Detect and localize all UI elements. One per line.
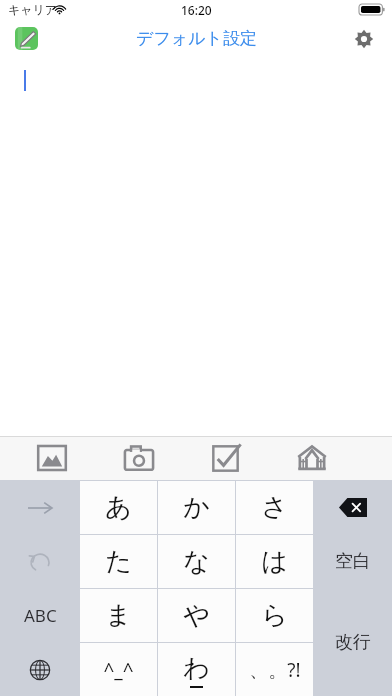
button[interactable]: 取り消し [1,535,79,588]
button[interactable]: 、。?! [236,643,313,696]
button[interactable]: 写真 [24,436,80,480]
button[interactable]: ら [236,589,313,642]
button[interactable]: わ [158,643,235,696]
staticText: あ [105,491,132,524]
button[interactable]: や [158,589,235,642]
staticText: 16:20 [181,2,212,18]
staticText: 改行 [335,631,371,654]
button[interactable]: か [158,481,235,534]
staticText: わ [183,652,210,685]
button[interactable]: は [236,535,313,588]
button[interactable]: 設定 [348,23,380,55]
staticText: 、。?! [249,657,301,683]
button[interactable]: 言語切り替え [1,643,79,696]
button[interactable]: カメラ [111,436,167,480]
staticText: ^_^ [103,657,134,683]
button[interactable]: ま [80,589,157,642]
staticText: 空白 [335,550,371,573]
staticText: な [183,545,210,578]
button[interactable]: 削除 [314,481,392,534]
button[interactable]: ABC [1,589,79,642]
button[interactable]: た [80,535,157,588]
button[interactable]: 空白 [314,535,392,588]
button[interactable]: あ [80,481,157,534]
button[interactable]: ホーム [284,436,340,480]
staticText: デフォルト設定 [136,28,257,49]
staticText: ABC [24,604,57,627]
staticText: か [183,491,210,524]
button[interactable]: カーソル移動 [1,481,79,534]
staticText: た [105,545,132,578]
staticText: ら [261,599,288,632]
button[interactable]: ^_^ [80,643,157,696]
button[interactable]: チェック [197,436,253,480]
button[interactable]: 改行 [314,589,392,696]
button[interactable]: アプリ [15,27,38,50]
staticText: や [183,599,210,632]
staticText: は [261,545,288,578]
staticText: キャリア [8,2,58,17]
button[interactable]: さ [236,481,313,534]
staticText: さ [261,491,288,524]
staticText: ま [105,599,132,632]
button[interactable]: な [158,535,235,588]
